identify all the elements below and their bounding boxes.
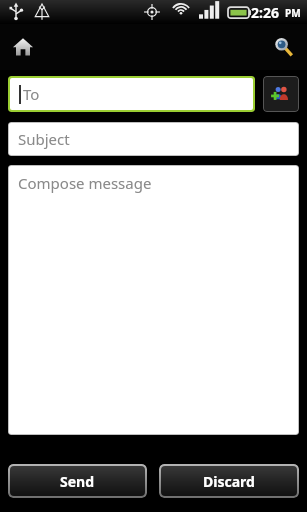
staticText: PM — [285, 6, 301, 20]
staticText: Compose message — [18, 173, 152, 193]
staticText: To — [23, 84, 40, 104]
button[interactable]: To — [10, 78, 253, 110]
staticText: Send — [60, 472, 95, 491]
button[interactable]: Compose message — [9, 166, 298, 434]
button[interactable]: Subject — [9, 123, 298, 155]
button[interactable]: Add contact — [264, 77, 298, 111]
button[interactable]: Send — [10, 466, 145, 496]
staticText: Discard — [203, 472, 255, 491]
staticText: 2:26 — [251, 3, 279, 22]
button[interactable]: Discard — [161, 466, 297, 496]
button[interactable]: Search — [267, 30, 301, 64]
button[interactable]: Home — [6, 30, 40, 64]
staticText: Subject — [18, 129, 70, 149]
